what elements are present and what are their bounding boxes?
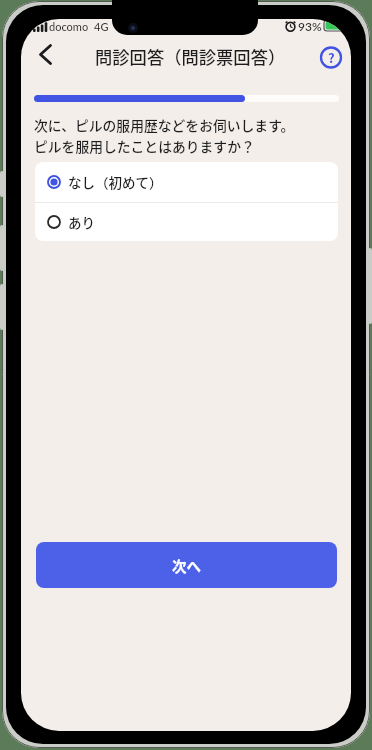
button[interactable]: あり: [35, 203, 338, 241]
staticText: 次へ: [172, 555, 201, 576]
staticText: 問診回答（問診票回答）: [95, 44, 286, 69]
staticText: 93%: [298, 19, 322, 33]
button[interactable]: なし（初めて）: [35, 162, 338, 202]
staticText: あり: [68, 212, 95, 232]
staticText: 次に、ピルの服用歴などをお伺いします。: [34, 115, 295, 135]
staticText: ピルを服用したことはありますか？: [34, 136, 255, 156]
staticText: 4G: [94, 20, 109, 33]
staticText: docomo: [49, 20, 89, 33]
button[interactable]: 次へ: [36, 542, 337, 588]
button[interactable]: ?: [320, 46, 342, 68]
staticText: ?: [328, 48, 335, 67]
staticText: なし（初めて）: [68, 172, 163, 192]
